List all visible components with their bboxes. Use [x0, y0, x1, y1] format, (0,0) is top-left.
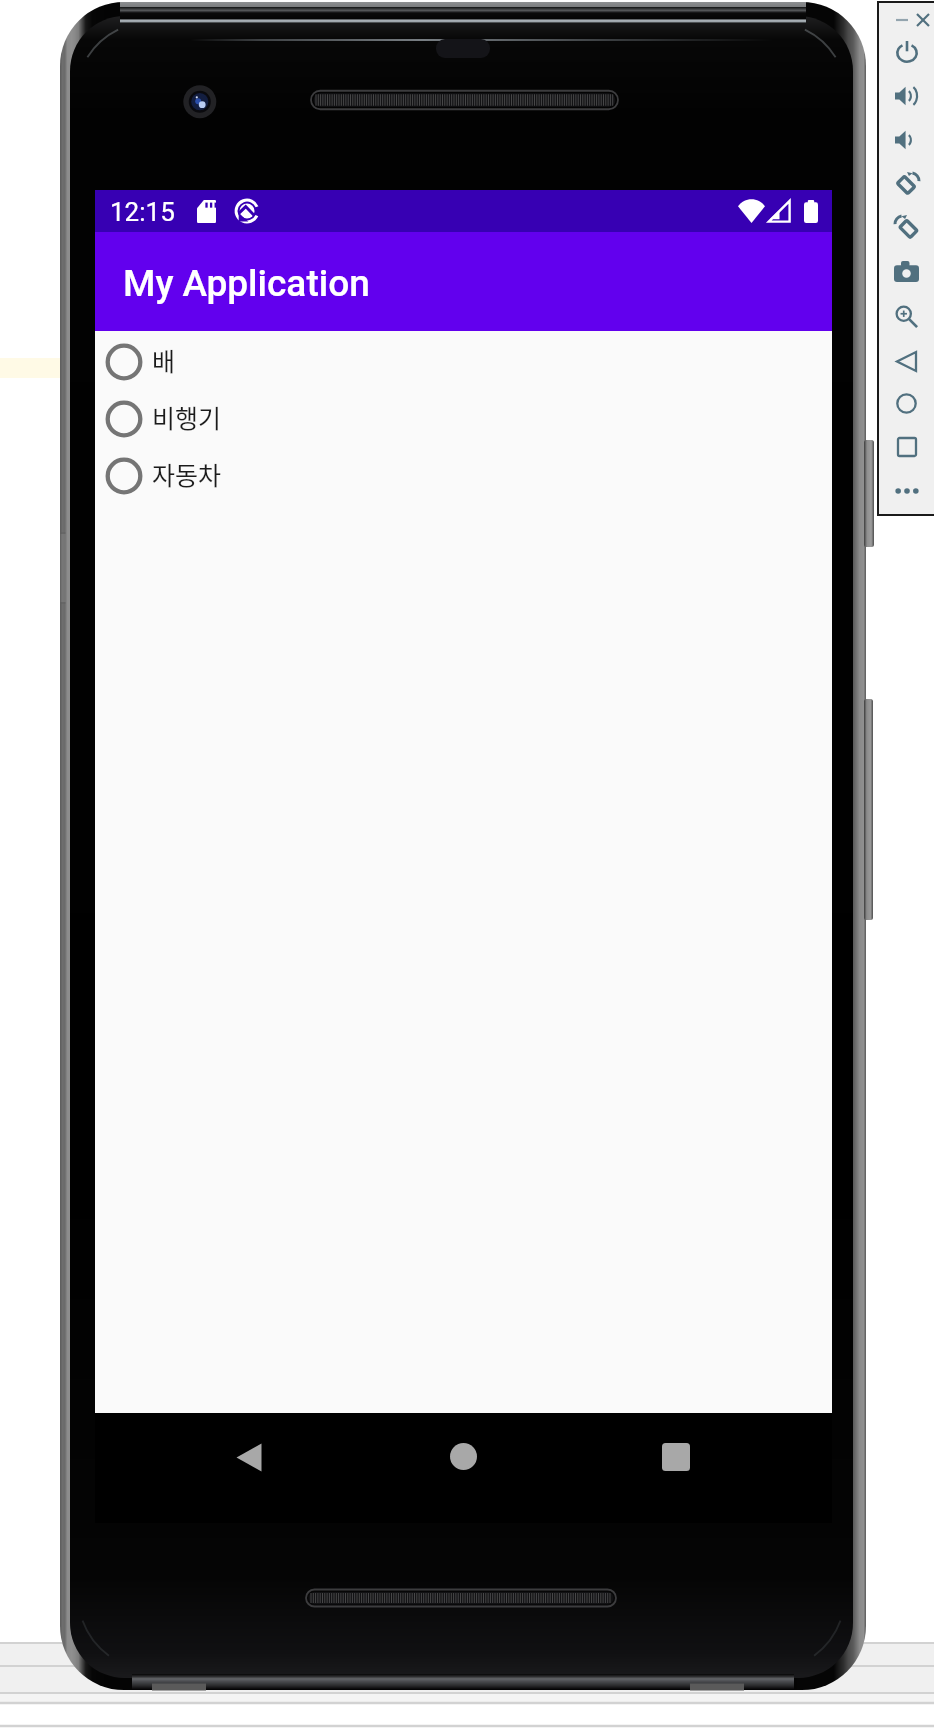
button[interactable]: 자동차	[95, 447, 832, 504]
staticText: My Application	[123, 262, 370, 305]
button[interactable]: Emulator control	[879, 163, 934, 205]
button[interactable]: Emulator control	[879, 382, 934, 424]
staticText: 자동차	[152, 456, 222, 492]
button[interactable]: 비행기	[95, 390, 832, 447]
button[interactable]: Recents	[630, 1413, 722, 1523]
button[interactable]: 배	[95, 333, 832, 390]
button[interactable]: Back	[203, 1413, 295, 1523]
button[interactable]: Minimize	[894, 12, 910, 28]
button[interactable]: Emulator control	[879, 295, 934, 337]
staticText: 12:15	[110, 197, 175, 227]
button[interactable]: Emulator control	[879, 119, 934, 161]
button[interactable]: Emulator control	[879, 31, 934, 73]
staticText: 배	[152, 342, 176, 378]
button[interactable]: Emulator control	[879, 426, 934, 468]
button[interactable]: Emulator control	[879, 340, 934, 382]
staticText: 비행기	[152, 399, 222, 435]
button[interactable]: Close	[915, 12, 931, 28]
button[interactable]: Emulator control	[879, 206, 934, 248]
button[interactable]: Emulator control	[879, 75, 934, 117]
button[interactable]: Emulator control	[879, 470, 934, 512]
button[interactable]: Home	[417, 1413, 509, 1523]
button[interactable]: Emulator control	[879, 250, 934, 292]
